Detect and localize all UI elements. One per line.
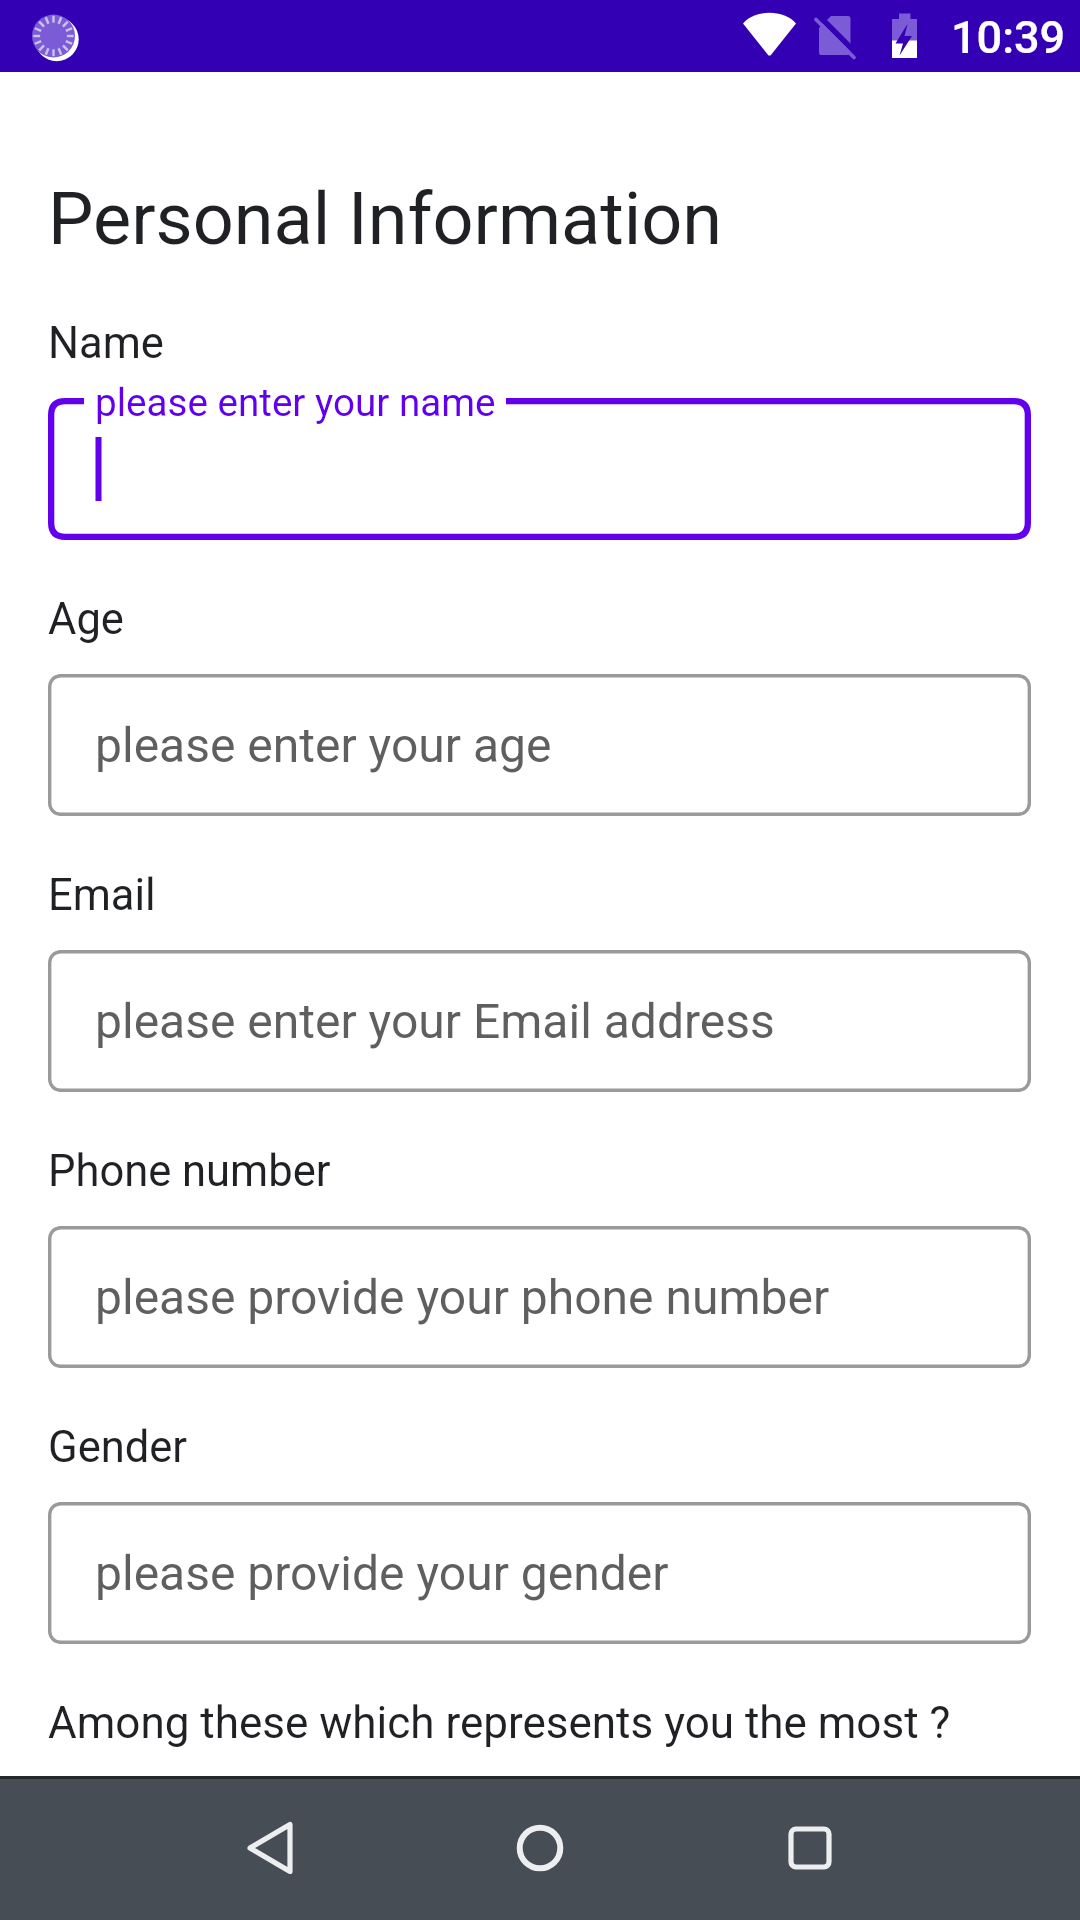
- staticText: 10:39: [951, 11, 1066, 64]
- staticText: Among these which represents you the mos…: [48, 1697, 951, 1749]
- button[interactable]: please provide your phone number: [48, 1226, 1031, 1368]
- staticText: Gender: [48, 1422, 188, 1473]
- staticText: please enter your name: [95, 380, 496, 425]
- staticText: please provide your phone number: [95, 1269, 830, 1325]
- button[interactable]: please enter your Email address: [48, 950, 1031, 1092]
- button[interactable]: please provide your gender: [48, 1502, 1031, 1644]
- button[interactable]: Home: [470, 1779, 610, 1920]
- button[interactable]: please enter your age: [48, 674, 1031, 816]
- staticText: Email: [48, 870, 156, 921]
- staticText: please enter your age: [95, 717, 552, 773]
- button[interactable]: please enter your name: [48, 398, 1031, 540]
- staticText: Name: [48, 318, 164, 369]
- button[interactable]: Back: [200, 1779, 340, 1920]
- staticText: Phone number: [48, 1146, 331, 1197]
- button[interactable]: Recent apps: [740, 1779, 880, 1920]
- staticText: please enter your Email address: [95, 993, 775, 1049]
- staticText: Age: [48, 594, 124, 645]
- staticText: please provide your gender: [95, 1545, 669, 1601]
- staticText: Personal Information: [48, 177, 723, 261]
